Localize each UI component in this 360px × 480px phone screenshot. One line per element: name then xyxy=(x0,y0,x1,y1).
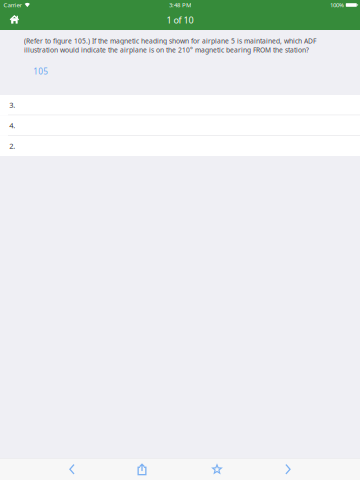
button[interactable]: 105 xyxy=(31,64,50,79)
button[interactable]: Previous question xyxy=(51,459,93,480)
button[interactable]: Home xyxy=(0,11,27,29)
staticText: 3:48 PM xyxy=(169,1,191,9)
button[interactable]: 2. xyxy=(0,136,360,156)
staticText: 2. xyxy=(9,141,15,151)
staticText: (Refer to figure 105.) If the magnetic h… xyxy=(24,36,316,54)
button[interactable]: 4. xyxy=(0,115,360,136)
staticText: Carrier xyxy=(3,1,21,9)
staticText: 105 xyxy=(33,66,48,77)
staticText: 4. xyxy=(9,120,15,130)
button[interactable]: Share xyxy=(121,459,163,480)
staticText: 3. xyxy=(9,100,15,110)
staticText: 100% xyxy=(330,1,344,9)
button[interactable]: 3. xyxy=(0,95,360,115)
button[interactable]: Next question xyxy=(267,459,309,480)
button[interactable]: Add to favourites xyxy=(196,459,238,480)
staticText: 1 of 10 xyxy=(166,14,193,26)
